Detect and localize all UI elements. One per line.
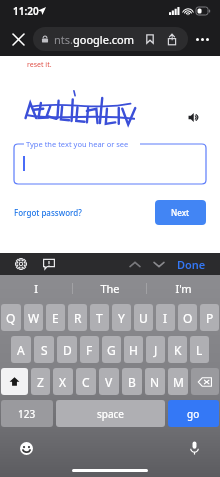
button[interactable]: R: [68, 304, 87, 331]
staticText: Y: [118, 310, 125, 326]
staticText: J: [154, 342, 158, 358]
button[interactable]: S: [34, 336, 54, 363]
staticText: Q: [6, 310, 16, 326]
staticText: R: [74, 310, 82, 326]
button[interactable]: Settings: [12, 255, 30, 273]
staticText: S: [41, 342, 48, 358]
staticText: W: [28, 310, 40, 326]
button[interactable]: More options: [191, 28, 213, 50]
staticText: D: [63, 342, 72, 358]
button[interactable]: Q: [1, 304, 21, 331]
button[interactable]: Next field: [149, 254, 169, 274]
button[interactable]: W: [24, 304, 43, 331]
staticText: I: [163, 310, 168, 326]
staticText: C: [82, 374, 90, 390]
staticText: H: [129, 342, 138, 358]
button[interactable]: E: [46, 304, 65, 331]
button[interactable]: K: [168, 336, 187, 363]
button[interactable]: Y: [112, 304, 131, 331]
button[interactable]: C: [76, 368, 96, 395]
button[interactable]: B: [122, 368, 142, 395]
staticText: google.com: [73, 32, 135, 47]
staticText: X: [59, 374, 67, 390]
button[interactable]: O: [178, 304, 197, 331]
staticText: F: [86, 342, 93, 358]
button[interactable]: space: [56, 400, 165, 427]
button[interactable]: J: [146, 336, 165, 363]
staticText: Z: [37, 374, 44, 390]
staticText: P: [206, 310, 214, 326]
button[interactable]: go: [168, 400, 219, 427]
button[interactable]: Previous field: [125, 254, 145, 274]
button[interactable]: Done: [175, 257, 208, 272]
staticText: I'm: [175, 281, 192, 296]
button[interactable]: D: [57, 336, 77, 363]
staticText: O: [183, 310, 193, 326]
staticText: T: [96, 310, 103, 326]
button[interactable]: X: [53, 368, 73, 395]
button[interactable]: 123: [1, 400, 53, 427]
button[interactable]: A: [11, 336, 31, 363]
staticText: reset it.: [27, 60, 52, 70]
staticText: Done: [177, 257, 206, 272]
button[interactable]: G: [102, 336, 121, 363]
button[interactable]: M: [168, 368, 188, 395]
staticText: B: [128, 374, 136, 390]
staticText: Type the text you hear or see: [26, 139, 129, 149]
staticText: space: [97, 407, 124, 421]
button[interactable]: Backspace: [191, 368, 219, 395]
staticText: go: [187, 407, 200, 421]
staticText: 11:20: [13, 4, 39, 18]
staticText: Next: [171, 207, 190, 218]
button[interactable]: Report issue: [40, 255, 58, 273]
staticText: N: [150, 374, 160, 390]
staticText: The: [100, 281, 120, 296]
button[interactable]: N: [145, 368, 165, 395]
button[interactable]: F: [80, 336, 99, 363]
staticText: A: [17, 342, 25, 358]
staticText: E: [52, 310, 59, 326]
button[interactable]: L: [190, 336, 209, 363]
staticText: 123: [18, 407, 36, 421]
button[interactable]: U: [134, 304, 153, 331]
button[interactable]: T: [90, 304, 109, 331]
button[interactable]: Dictate: [184, 438, 204, 458]
button[interactable]: Share: [164, 31, 180, 47]
button[interactable]: Z: [31, 368, 50, 395]
button[interactable]: Forgot password?: [14, 203, 82, 222]
staticText: V: [105, 374, 113, 390]
staticText: Forgot password?: [14, 207, 82, 218]
button[interactable]: Emoji: [16, 438, 36, 458]
staticText: M: [173, 374, 184, 390]
button[interactable]: Shift: [1, 368, 28, 395]
staticText: U: [139, 310, 148, 326]
staticText: G: [107, 342, 116, 358]
button[interactable]: I: [0, 275, 72, 301]
button[interactable]: I'm: [147, 275, 220, 301]
button[interactable]: Play audio: [184, 108, 202, 126]
button[interactable]: The: [73, 275, 146, 301]
staticText: L: [196, 342, 203, 358]
button[interactable]: I: [156, 304, 175, 331]
staticText: K: [174, 342, 182, 358]
button[interactable]: V: [99, 368, 119, 395]
button[interactable]: Bookmark: [142, 31, 158, 47]
button[interactable]: Close: [7, 28, 29, 50]
staticText: nts.: [54, 32, 73, 47]
button[interactable]: Type the text you hear or see: [14, 144, 206, 184]
button[interactable]: H: [124, 336, 143, 363]
button[interactable]: nts.: [33, 27, 188, 51]
staticText: I: [34, 281, 38, 296]
button[interactable]: Next: [155, 200, 206, 225]
button[interactable]: P: [200, 304, 219, 331]
